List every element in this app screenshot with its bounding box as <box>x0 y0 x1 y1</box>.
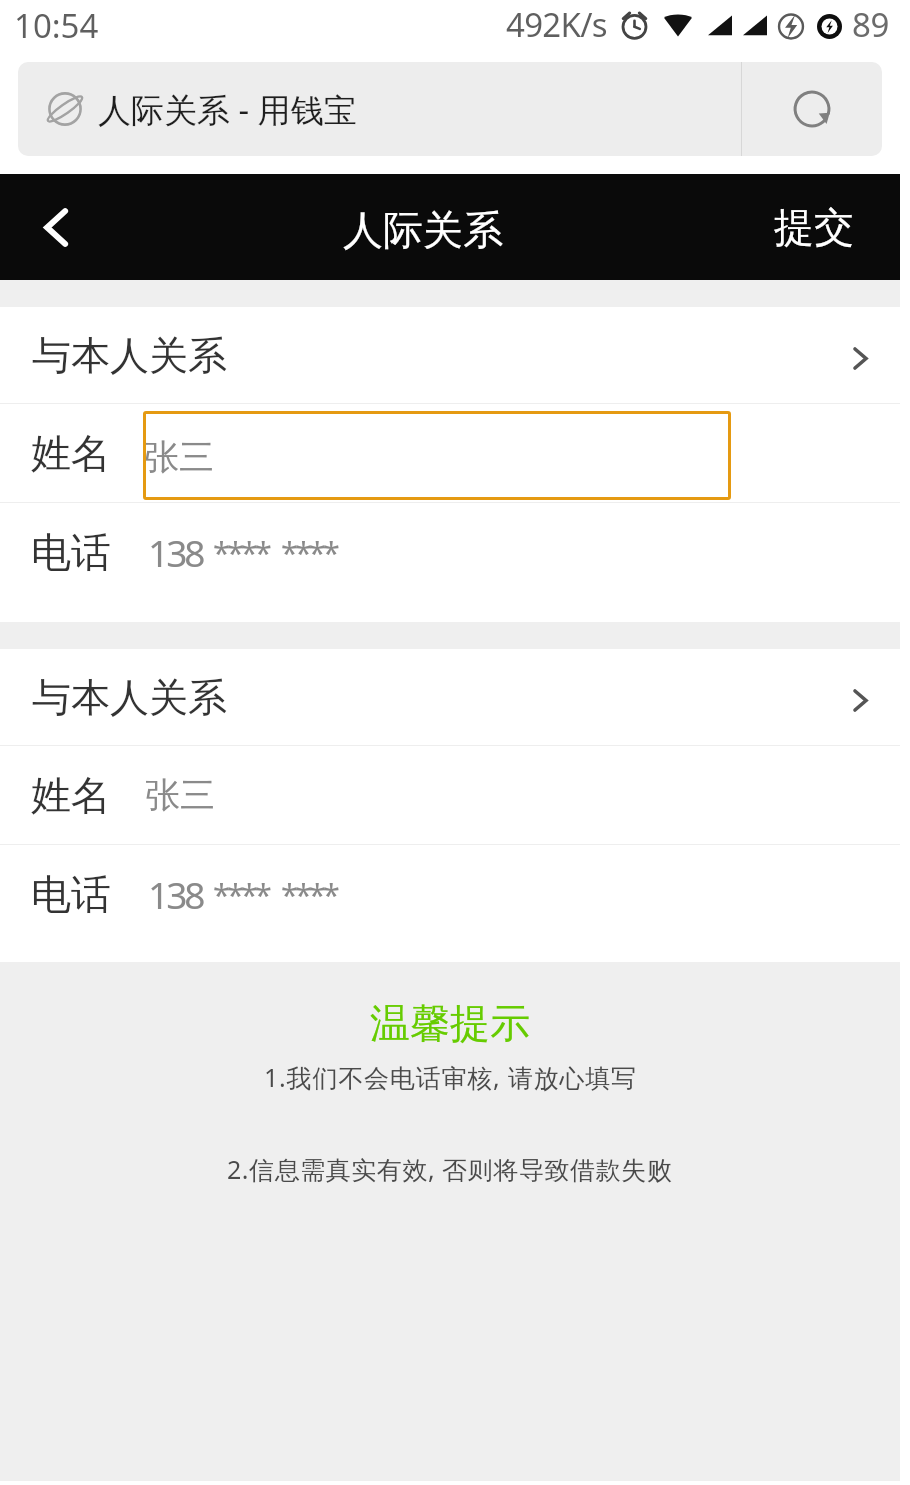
staticText: 张三 <box>144 435 214 479</box>
staticText: 提交 <box>774 202 854 252</box>
staticText: 姓名 <box>31 428 111 478</box>
staticText: 与本人关系 <box>32 331 227 380</box>
button[interactable]: 提交 <box>727 174 900 280</box>
button[interactable]: 与本人关系 <box>0 649 900 745</box>
staticText: 89 <box>852 2 889 47</box>
button[interactable]: Back <box>0 174 112 280</box>
staticText: **** <box>213 531 269 573</box>
button[interactable]: 人际关系 - 用钱宝 <box>18 62 741 156</box>
staticText: 1.我们不会电话审核, 请放心填写 <box>264 1060 637 1094</box>
staticText: 与本人关系 <box>32 673 227 722</box>
staticText: 人际关系 - 用钱宝 <box>98 87 357 132</box>
staticText: 张三 <box>145 773 215 817</box>
staticText: 温馨提示 <box>370 998 530 1048</box>
staticText: 2.信息需真实有效, 否则将导致借款失败 <box>227 1152 673 1186</box>
button[interactable]: 与本人关系 <box>0 307 900 403</box>
staticText: 人际关系 <box>343 205 503 255</box>
staticText: 电话 <box>31 527 111 577</box>
button[interactable]: Reload page <box>742 62 882 156</box>
staticText: 492K/s <box>506 2 607 47</box>
staticText: 电话 <box>31 869 111 919</box>
staticText: **** <box>281 531 337 573</box>
staticText: **** <box>281 873 337 915</box>
staticText: 138 <box>148 527 203 577</box>
staticText: 138 <box>148 869 203 919</box>
staticText: 10:54 <box>14 3 99 48</box>
staticText: 姓名 <box>31 770 111 820</box>
button[interactable]: 张三 <box>143 411 731 500</box>
staticText: **** <box>213 873 269 915</box>
